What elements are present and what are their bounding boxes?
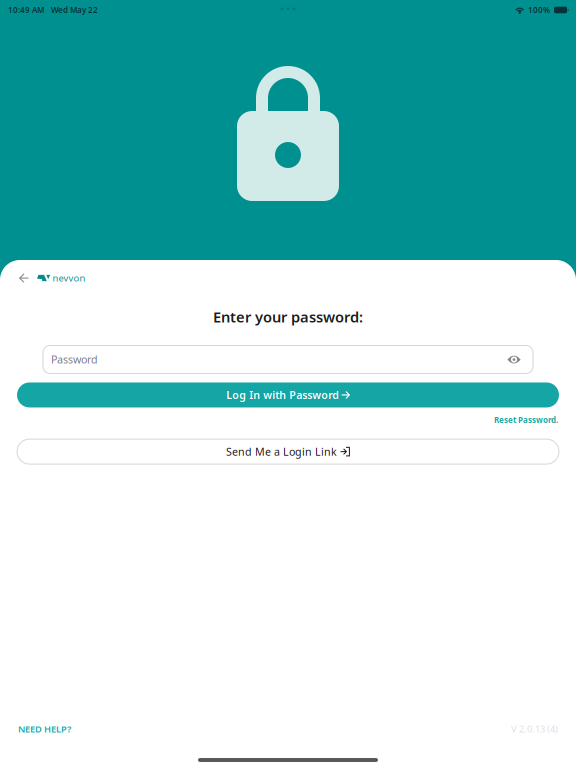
button[interactable]: Show password — [503, 348, 525, 370]
staticText: Wed May 22 — [51, 5, 98, 15]
staticText: Reset Password. — [494, 414, 558, 425]
staticText: NEED HELP? — [18, 723, 71, 735]
staticText: Password — [51, 352, 98, 367]
button[interactable]: Send Me a Login Link — [17, 439, 559, 464]
button[interactable]: Reset Password. — [494, 412, 558, 427]
staticText: V 2.0.13 (4) — [511, 723, 558, 735]
button[interactable]: Log In with Password — [17, 382, 559, 407]
button[interactable]: NEED HELP? — [18, 723, 71, 735]
staticText: Send Me a Login Link — [226, 444, 337, 459]
staticText: Enter your password: — [213, 307, 363, 326]
staticText: nevvon — [52, 272, 85, 284]
staticText: 10:49 AM — [8, 5, 44, 15]
staticText: 100% — [528, 5, 550, 15]
button[interactable]: Back — [9, 268, 37, 288]
staticText: Log In with Password — [226, 388, 339, 402]
